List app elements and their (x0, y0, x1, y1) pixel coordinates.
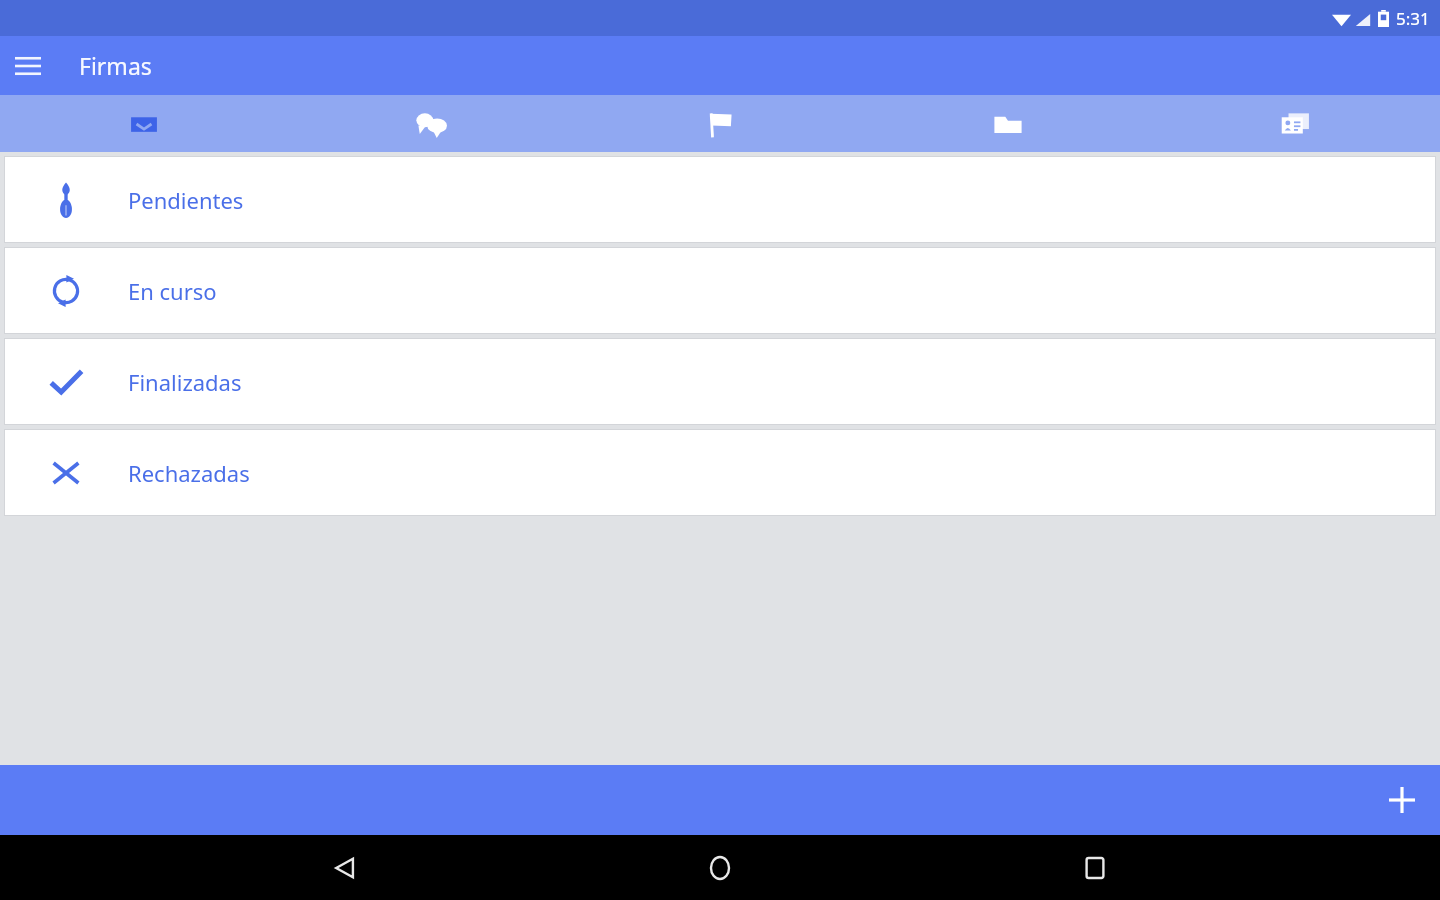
button[interactable]: Back (315, 838, 375, 898)
button[interactable]: En curso (4, 247, 1436, 334)
staticText: Rechazadas (128, 458, 250, 488)
button[interactable]: Contacts (1152, 95, 1440, 152)
button[interactable]: Home (690, 838, 750, 898)
staticText: 5:31 (1396, 7, 1430, 30)
staticText: Firmas (79, 50, 152, 81)
button[interactable]: Folders (864, 95, 1152, 152)
staticText: Pendientes (128, 185, 244, 215)
button[interactable]: Recent apps (1065, 838, 1125, 898)
button[interactable]: Open navigation menu (6, 44, 50, 88)
staticText: En curso (128, 276, 217, 306)
button[interactable]: Add new signature (1378, 776, 1426, 824)
button[interactable]: Flagged (576, 95, 864, 152)
button[interactable]: Inbox (0, 95, 288, 152)
staticText: Finalizadas (128, 367, 242, 397)
button[interactable]: Messages (288, 95, 576, 152)
button[interactable]: Finalizadas (4, 338, 1436, 425)
button[interactable]: Pendientes (4, 156, 1436, 243)
button[interactable]: Rechazadas (4, 429, 1436, 516)
